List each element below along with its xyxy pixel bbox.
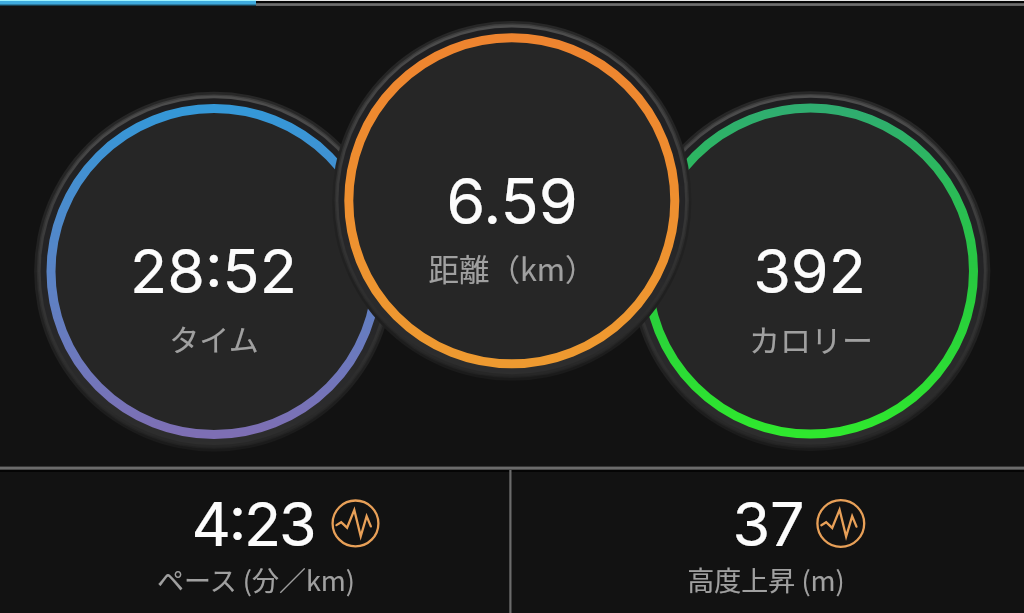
button[interactable]: Time 28:52: [0, 5, 341, 467]
staticText: ペース (分／km): [157, 560, 355, 599]
button[interactable]: Calories 392: [682, 5, 1024, 467]
staticText: 距離（km）: [428, 246, 596, 290]
staticText: 37: [732, 487, 805, 561]
button[interactable]: Distance 6.59 km: [341, 5, 682, 467]
staticText: 392: [753, 234, 866, 308]
staticText: 4:23: [191, 487, 315, 561]
staticText: 28:52: [130, 234, 297, 308]
button[interactable]: Pace 4:23 per km: [0, 470, 509, 613]
button[interactable]: Elevation gain 37 m: [511, 470, 1024, 613]
staticText: 6.59: [446, 163, 578, 239]
staticText: タイム: [169, 316, 259, 359]
staticText: カロリー: [749, 316, 873, 361]
staticText: 高度上昇 (m): [687, 560, 845, 599]
